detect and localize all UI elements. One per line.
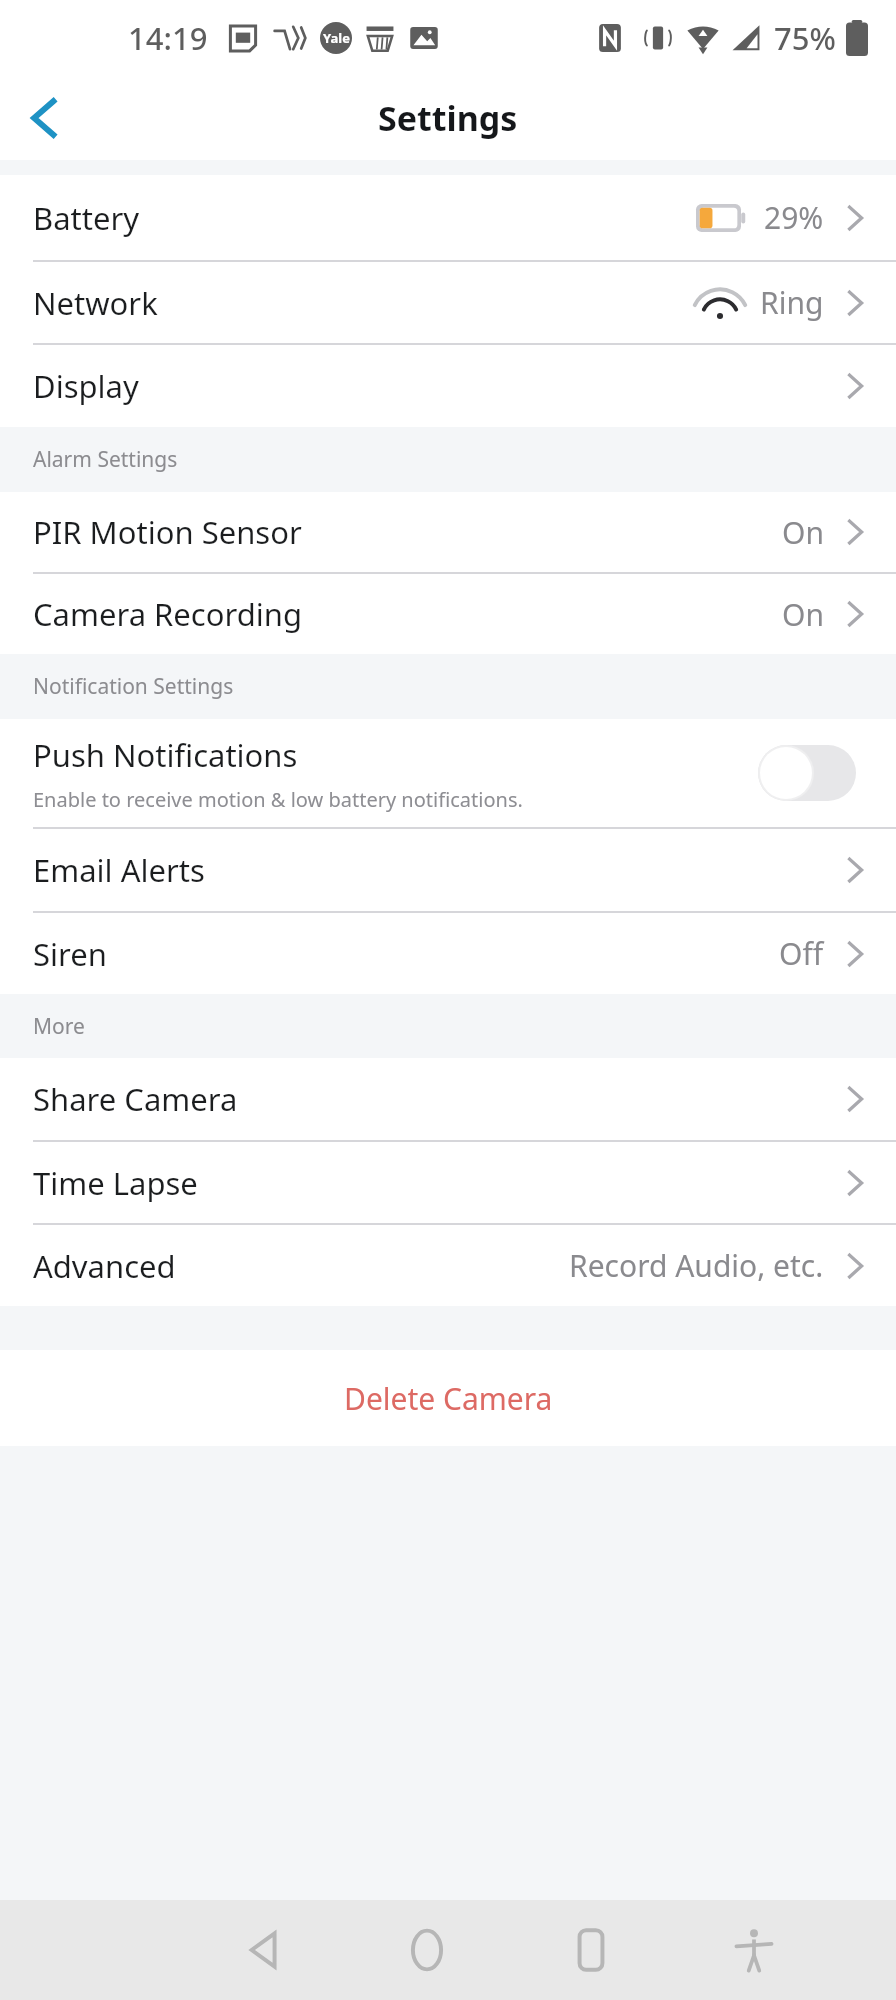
- button[interactable]: Siren: [0, 913, 896, 994]
- staticText: On: [782, 512, 824, 553]
- staticText: Camera Recording: [33, 593, 302, 635]
- staticText: More: [33, 1012, 85, 1041]
- button[interactable]: Accessibility: [704, 1900, 804, 2000]
- button[interactable]: Back: [0, 75, 90, 160]
- button[interactable]: Display: [0, 345, 896, 427]
- button[interactable]: Home: [377, 1900, 477, 2000]
- staticText: Siren: [33, 933, 107, 975]
- staticText: Settings: [378, 95, 518, 141]
- button[interactable]: Email Alerts: [0, 829, 896, 911]
- staticText: Delete Camera: [344, 1378, 553, 1419]
- button[interactable]: Network: [0, 262, 896, 343]
- staticText: Battery: [33, 197, 140, 239]
- staticText: Share Camera: [33, 1078, 238, 1120]
- staticText: On: [782, 594, 824, 635]
- button[interactable]: Push Notifications: [758, 745, 856, 801]
- button[interactable]: Battery: [0, 175, 896, 260]
- staticText: Yale: [323, 29, 350, 47]
- staticText: Push Notifications: [33, 734, 298, 776]
- staticText: Off: [779, 933, 824, 974]
- staticText: PIR Motion Sensor: [33, 511, 302, 553]
- staticText: Record Audio, etc.: [569, 1245, 824, 1286]
- button[interactable]: Share Camera: [0, 1058, 896, 1140]
- staticText: Display: [33, 365, 139, 407]
- button[interactable]: Back: [214, 1900, 314, 2000]
- button[interactable]: Push Notifications: [0, 719, 896, 827]
- button[interactable]: Time Lapse: [0, 1142, 896, 1223]
- staticText: Enable to receive motion & low battery n…: [33, 786, 523, 813]
- staticText: 75%: [774, 17, 836, 59]
- staticText: Advanced: [33, 1245, 176, 1287]
- button[interactable]: Delete Camera: [0, 1350, 896, 1446]
- staticText: Email Alerts: [33, 849, 205, 891]
- staticText: Notification Settings: [33, 672, 234, 701]
- button[interactable]: Camera Recording: [0, 574, 896, 654]
- staticText: Ring: [760, 282, 824, 323]
- button[interactable]: Advanced: [0, 1225, 896, 1306]
- staticText: 29%: [764, 197, 824, 238]
- button[interactable]: PIR Motion Sensor: [0, 492, 896, 572]
- button[interactable]: Recents: [541, 1900, 641, 2000]
- staticText: Network: [33, 282, 158, 324]
- staticText: Time Lapse: [33, 1162, 198, 1204]
- staticText: 14:19: [128, 17, 208, 59]
- staticText: Alarm Settings: [33, 445, 178, 474]
